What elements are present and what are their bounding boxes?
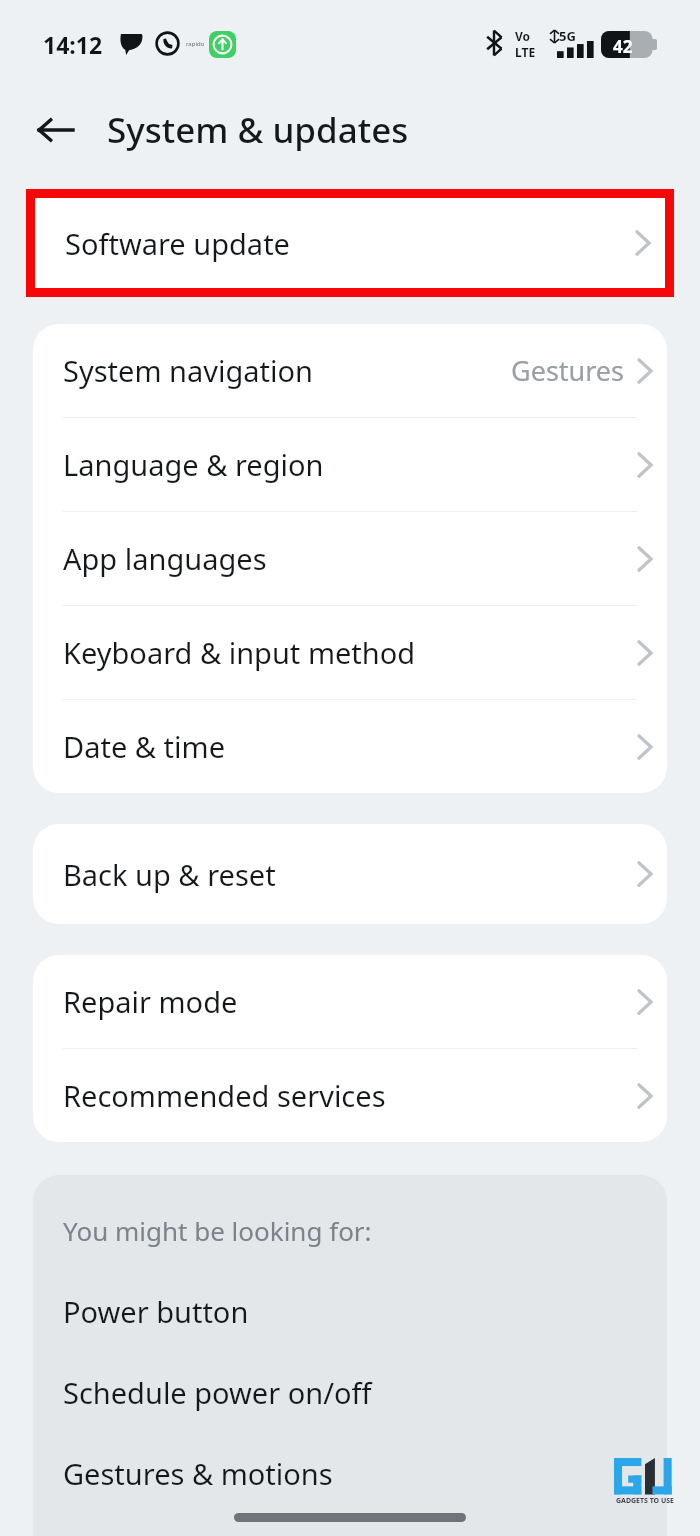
staticText: Date & time (63, 727, 637, 766)
button[interactable]: Power button (33, 1292, 667, 1331)
button[interactable]: Software update (35, 198, 665, 288)
staticText: Recommended services (63, 1076, 637, 1115)
staticText: LTE (515, 44, 536, 60)
button[interactable]: Date & time (33, 700, 667, 793)
staticText: Vo (515, 28, 531, 44)
staticText: GADGETS TO USE (614, 1496, 676, 1506)
staticText: 5G (559, 27, 576, 45)
staticText: rapido (186, 40, 205, 48)
button[interactable]: System navigation (33, 324, 667, 417)
staticText: Language & region (63, 445, 637, 484)
staticText: Software update (65, 224, 635, 263)
button[interactable]: App languages (33, 512, 667, 605)
button[interactable]: Back (24, 99, 86, 161)
staticText: System navigation (63, 351, 511, 390)
staticText: You might be looking for: (63, 1213, 372, 1248)
button[interactable]: Back up & reset (33, 824, 667, 924)
button[interactable]: Recommended services (33, 1049, 667, 1142)
staticText: 14:12 (43, 29, 103, 60)
staticText: System & updates (107, 106, 409, 154)
staticText: Repair mode (63, 982, 637, 1021)
staticText: Keyboard & input method (63, 633, 637, 672)
button[interactable]: Language & region (33, 418, 667, 511)
staticText: Gestures (511, 352, 625, 389)
button[interactable]: Gestures & motions (33, 1454, 667, 1493)
staticText: App languages (63, 539, 637, 578)
button[interactable]: Repair mode (33, 955, 667, 1048)
staticText: Back up & reset (63, 855, 637, 894)
button[interactable]: Keyboard & input method (33, 606, 667, 699)
button[interactable]: Schedule power on/off (33, 1373, 667, 1412)
staticText: 42 (613, 35, 633, 58)
